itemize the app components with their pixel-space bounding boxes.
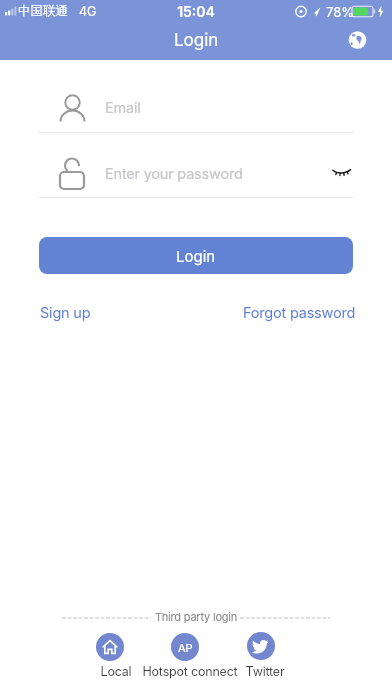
staticText: 4G bbox=[79, 4, 97, 19]
button[interactable] bbox=[96, 633, 124, 661]
staticText: 中国联通 bbox=[18, 3, 68, 19]
staticText: Email bbox=[105, 99, 141, 117]
button[interactable]: Login bbox=[39, 237, 353, 274]
staticText: Sign up bbox=[40, 304, 91, 322]
staticText: Hotspot connect bbox=[130, 664, 250, 679]
staticText: Local bbox=[84, 664, 148, 679]
staticText: AP bbox=[178, 641, 193, 654]
button[interactable]: Forgot password bbox=[239, 300, 352, 318]
staticText: 15:04 bbox=[0, 3, 392, 20]
button[interactable]: Enter your password bbox=[39, 154, 353, 194]
staticText: 78% bbox=[326, 4, 354, 20]
staticText: Login bbox=[176, 247, 216, 265]
button[interactable]: Sign up bbox=[36, 300, 87, 318]
button[interactable] bbox=[345, 28, 369, 52]
staticText: Third party login bbox=[0, 610, 392, 623]
staticText: Enter your password bbox=[105, 165, 243, 183]
staticText: Login bbox=[174, 30, 219, 51]
button[interactable]: Email bbox=[39, 88, 353, 128]
staticText: Forgot password bbox=[243, 304, 356, 322]
button[interactable]: AP bbox=[171, 633, 199, 661]
staticText: Twitter bbox=[233, 664, 297, 679]
button[interactable] bbox=[247, 632, 275, 660]
button[interactable] bbox=[332, 167, 352, 180]
